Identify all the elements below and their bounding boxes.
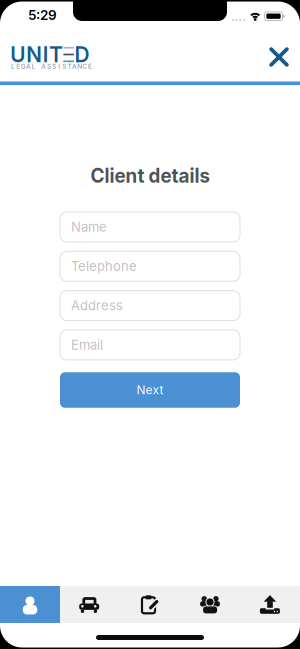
button[interactable]: Accident report: [120, 586, 180, 623]
staticText: N: [26, 42, 42, 67]
staticText: T: [49, 42, 63, 67]
staticText: C: [82, 62, 87, 70]
staticText: U: [10, 42, 25, 67]
staticText: Email: [71, 337, 103, 353]
button[interactable]: Witnesses: [180, 586, 240, 623]
staticText: N: [77, 62, 82, 70]
button[interactable]: Next: [60, 372, 240, 408]
staticText: A: [72, 62, 77, 70]
staticText: G: [21, 62, 26, 70]
button[interactable]: Upload: [240, 586, 300, 623]
staticText: Client details: [90, 164, 209, 187]
button[interactable]: Telephone: [60, 251, 240, 281]
staticText: S: [52, 62, 56, 70]
staticText: I: [43, 42, 49, 67]
button[interactable]: Address: [60, 291, 240, 321]
staticText: Next: [136, 383, 163, 397]
staticText: I: [58, 62, 60, 70]
staticText: E: [88, 62, 92, 70]
staticText: S: [47, 62, 51, 70]
staticText: Name: [71, 219, 107, 235]
staticText: L: [11, 62, 15, 70]
staticText: L: [31, 62, 35, 70]
button[interactable]: Name: [60, 212, 240, 242]
staticText: 5:29: [28, 7, 57, 23]
button[interactable]: Vehicle details: [60, 586, 120, 623]
staticText: S: [62, 62, 66, 70]
staticText: Telephone: [71, 258, 137, 274]
staticText: Address: [71, 298, 123, 313]
staticText: T: [67, 62, 71, 70]
button[interactable]: Close: [262, 40, 296, 74]
staticText: E: [16, 62, 20, 70]
staticText: D: [74, 42, 89, 67]
button[interactable]: Client details: [0, 586, 60, 623]
staticText: A: [41, 62, 46, 70]
staticText: A: [26, 62, 31, 70]
button[interactable]: Email: [60, 330, 240, 360]
